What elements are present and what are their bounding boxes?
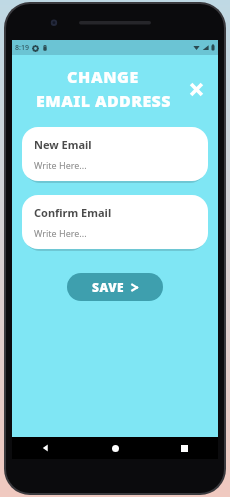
staticText: Write Here... <box>34 227 87 239</box>
button[interactable]: Back <box>36 438 56 458</box>
staticText: Write Here... <box>34 159 87 171</box>
button[interactable]: Home <box>105 438 125 458</box>
staticText: Confirm Email <box>34 205 112 220</box>
button[interactable]: Recent apps <box>174 438 194 458</box>
staticText: EMAIL ADDRESS <box>36 90 171 112</box>
button[interactable]: Confirm Email <box>22 195 208 249</box>
staticText: SAVE <box>92 279 125 295</box>
staticText: New Email <box>34 137 92 152</box>
button[interactable]: New Email <box>22 127 208 181</box>
staticText: CHANGE <box>67 66 139 88</box>
button[interactable]: SAVE <box>67 273 163 301</box>
button[interactable]: Close <box>182 75 210 103</box>
staticText: 8:19 <box>15 43 29 53</box>
